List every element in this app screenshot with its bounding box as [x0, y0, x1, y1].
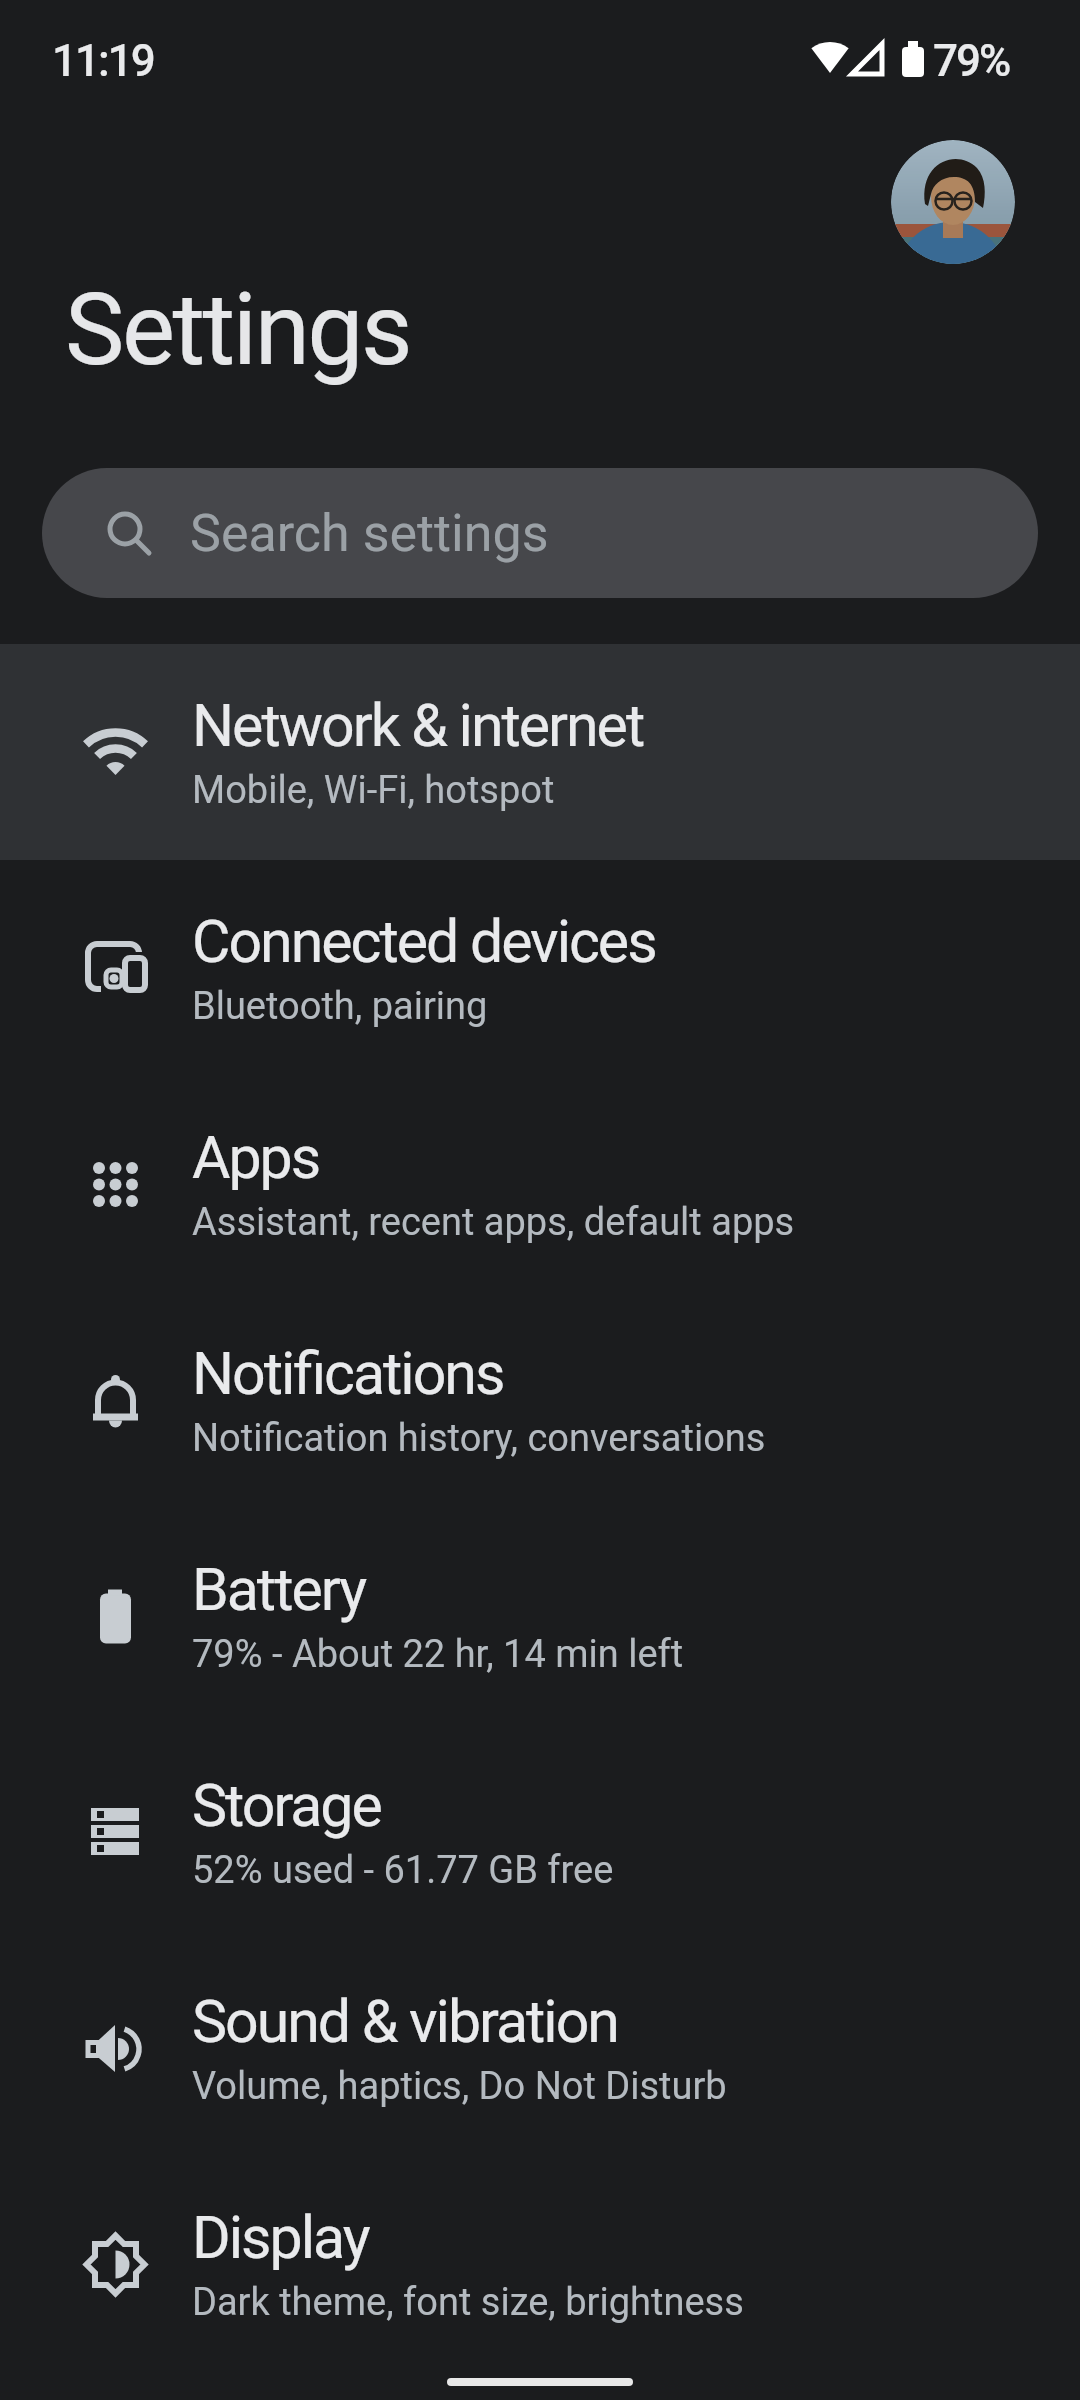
staticText: Notification history, conversations — [192, 1416, 766, 1461]
staticText: 79% - About 22 hr, 14 min left — [192, 1632, 684, 1677]
staticText: Volume, haptics, Do Not Disturb — [192, 2064, 727, 2109]
staticText: Notifications — [192, 1339, 504, 1408]
button[interactable]: Storage — [0, 1724, 1080, 1940]
staticText: Dark theme, font size, brightness — [192, 2280, 744, 2325]
button[interactable]: Connected devices — [0, 860, 1080, 1076]
staticText: 52% used - 61.77 GB free — [192, 1848, 614, 1893]
button[interactable]: Sound & vibration — [0, 1940, 1080, 2156]
button[interactable]: Search settings — [42, 468, 1038, 598]
button[interactable]: Display — [0, 2156, 1080, 2372]
staticText: Assistant, recent apps, default apps — [192, 1200, 795, 1245]
staticText: Settings — [65, 271, 411, 388]
button[interactable] — [891, 140, 1015, 264]
staticText: Apps — [192, 1123, 320, 1192]
staticText: Display — [192, 2203, 369, 2272]
button[interactable]: Apps — [0, 1076, 1080, 1292]
staticText: Sound & vibration — [192, 1987, 618, 2056]
staticText: Storage — [192, 1771, 381, 1840]
staticText: Mobile, Wi-Fi, hotspot — [192, 768, 555, 813]
button[interactable]: Battery — [0, 1508, 1080, 1724]
staticText: 79% — [933, 35, 1010, 87]
staticText: Battery — [192, 1555, 366, 1624]
staticText: Connected devices — [192, 907, 656, 976]
staticText: Network & internet — [192, 691, 644, 760]
staticText: Search settings — [190, 503, 549, 564]
button[interactable]: Notifications — [0, 1292, 1080, 1508]
staticText: 11:19 — [52, 35, 154, 87]
staticText: Bluetooth, pairing — [192, 984, 488, 1029]
button[interactable]: Network & internet — [0, 644, 1080, 860]
